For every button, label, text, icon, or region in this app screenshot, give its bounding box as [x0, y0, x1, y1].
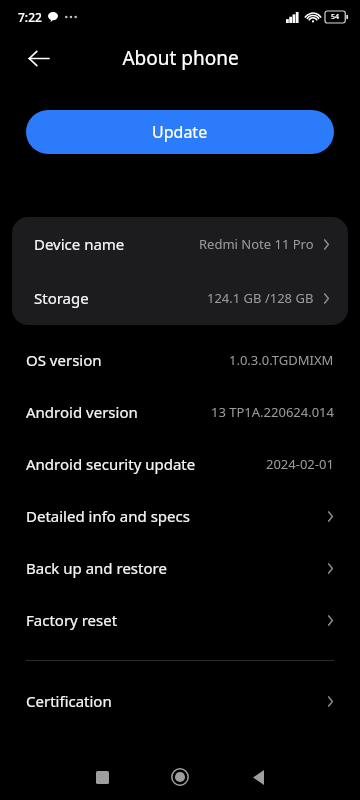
button[interactable]: Android security update — [0, 438, 360, 490]
staticText: OS version — [26, 350, 102, 370]
button[interactable]: Update — [26, 110, 334, 154]
button[interactable]: Recent apps — [63, 754, 141, 800]
button[interactable]: Back up and restore — [0, 542, 360, 594]
staticText: Device name — [34, 234, 125, 254]
button[interactable]: Back — [18, 38, 58, 78]
staticText: Android security update — [26, 454, 196, 474]
button[interactable]: Android version — [0, 386, 360, 438]
button[interactable]: Device name — [12, 217, 348, 271]
button[interactable]: Factory reset — [0, 594, 360, 646]
staticText: Detailed info and specs — [26, 506, 190, 526]
staticText: Certification — [26, 691, 112, 711]
button[interactable]: Detailed info and specs — [0, 490, 360, 542]
button[interactable]: OS version — [0, 334, 360, 386]
staticText: 7:22 — [18, 9, 42, 25]
staticText: Factory reset — [26, 610, 118, 630]
staticText: About phone — [122, 45, 239, 71]
staticText: 13 TP1A.220624.014 — [211, 403, 334, 421]
staticText: Update — [152, 121, 208, 143]
staticText: Back up and restore — [26, 558, 167, 578]
staticText: 54 — [331, 12, 340, 22]
staticText: Redmi Note 11 Pro — [199, 235, 314, 253]
button[interactable]: Home — [141, 754, 219, 800]
staticText: 1.0.3.0.TGDMIXM — [229, 351, 334, 369]
staticText: 2024-02-01 — [266, 455, 334, 473]
button[interactable]: Certification — [0, 675, 360, 727]
staticText: 124.1 GB /128 GB — [207, 289, 314, 307]
staticText: Storage — [34, 288, 89, 308]
staticText: Android version — [26, 402, 138, 422]
button[interactable]: Back — [219, 754, 297, 800]
button[interactable]: Storage — [12, 271, 348, 325]
